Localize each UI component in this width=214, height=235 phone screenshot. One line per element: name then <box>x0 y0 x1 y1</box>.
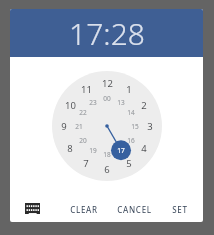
button[interactable]: CLEAR <box>62 199 106 219</box>
staticText: 11 <box>81 83 92 96</box>
staticText: CLEAR <box>70 204 98 215</box>
staticText: 4 <box>141 142 147 155</box>
staticText: 6 <box>104 163 110 176</box>
staticText: 16 <box>127 136 135 145</box>
button[interactable]: 17:28 <box>10 9 203 57</box>
staticText: 14 <box>127 108 135 117</box>
staticText: 7 <box>83 157 89 170</box>
staticText: 3 <box>147 120 153 133</box>
staticText: 23 <box>89 98 97 107</box>
staticText: 19 <box>89 146 97 155</box>
staticText: 10 <box>65 99 76 112</box>
staticText: 8 <box>67 142 73 155</box>
staticText: 9 <box>61 120 67 133</box>
button[interactable]: CANCEL <box>112 199 156 219</box>
staticText: 21 <box>75 122 83 131</box>
button[interactable]: SET <box>158 199 202 219</box>
staticText: CANCEL <box>117 204 152 215</box>
staticText: 15 <box>131 122 139 131</box>
staticText: 13 <box>117 98 125 107</box>
staticText: 20 <box>79 136 87 145</box>
button[interactable]: Switch to text input <box>19 197 45 219</box>
staticText: 00 <box>103 94 111 103</box>
staticText: 18 <box>103 150 111 159</box>
staticText: SET <box>172 204 188 215</box>
staticText: 12 <box>102 77 113 90</box>
staticText: 17:28 <box>69 13 145 54</box>
staticText: 22 <box>79 108 87 117</box>
staticText: 1 <box>126 83 132 96</box>
staticText: 2 <box>141 99 147 112</box>
staticText: 17 <box>117 146 125 155</box>
staticText: 5 <box>126 157 132 170</box>
